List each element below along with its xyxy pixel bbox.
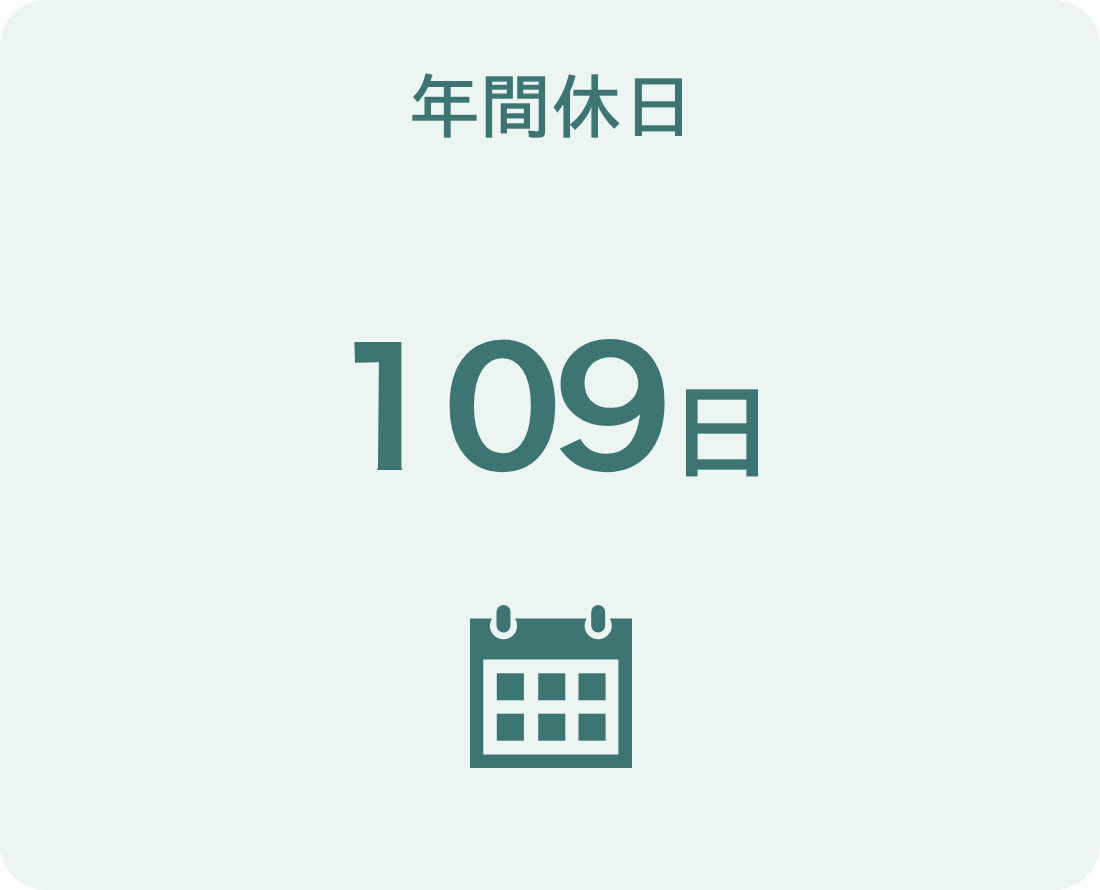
staticText: 9 [553, 318, 676, 489]
staticText: 日 [668, 378, 776, 483]
button[interactable]: Calendar [470, 605, 632, 768]
staticText: 年間休日 [408, 70, 694, 141]
staticText: 0 [443, 318, 562, 489]
staticText: 日 [668, 378, 776, 483]
button[interactable]: 年間休日 109日 [0, 0, 1100, 890]
staticText: 0 [443, 318, 562, 489]
staticText: 年間休日 [408, 70, 694, 141]
staticText: 9 [553, 318, 676, 489]
